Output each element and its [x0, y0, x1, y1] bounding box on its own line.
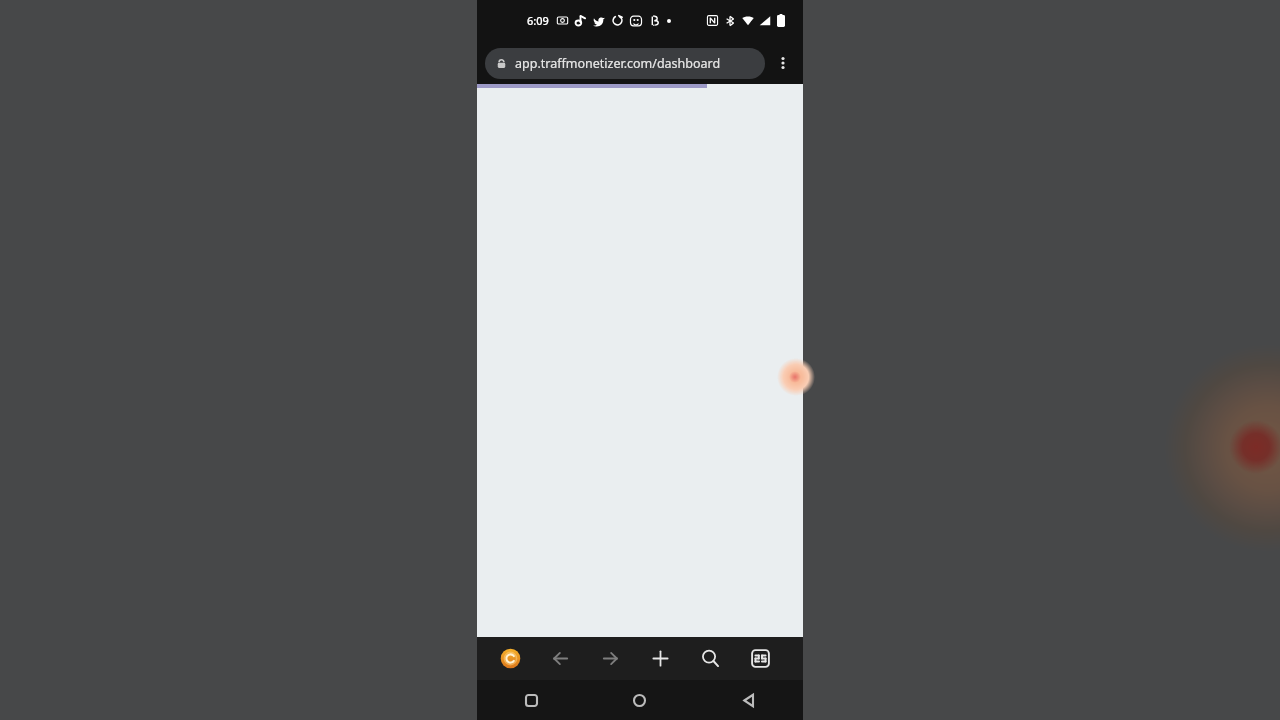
- button[interactable]: More options: [765, 45, 801, 81]
- button[interactable]: app.traffmonetizer.com/dashboard: [485, 48, 765, 79]
- button[interactable]: Chrome home: [491, 637, 529, 680]
- button[interactable]: Search: [691, 637, 729, 680]
- button[interactable]: Home: [585, 680, 694, 720]
- button[interactable]: New tab: [641, 637, 679, 680]
- staticText: app.traffmonetizer.com/dashboard: [515, 55, 721, 72]
- button[interactable]: Recent apps: [477, 680, 585, 720]
- button[interactable]: Back: [541, 637, 579, 680]
- button[interactable]: Tabs, 25 open: [741, 637, 779, 680]
- button[interactable]: Forward: [591, 637, 629, 680]
- button[interactable]: Back: [694, 680, 803, 720]
- staticText: 6:09: [527, 13, 549, 28]
